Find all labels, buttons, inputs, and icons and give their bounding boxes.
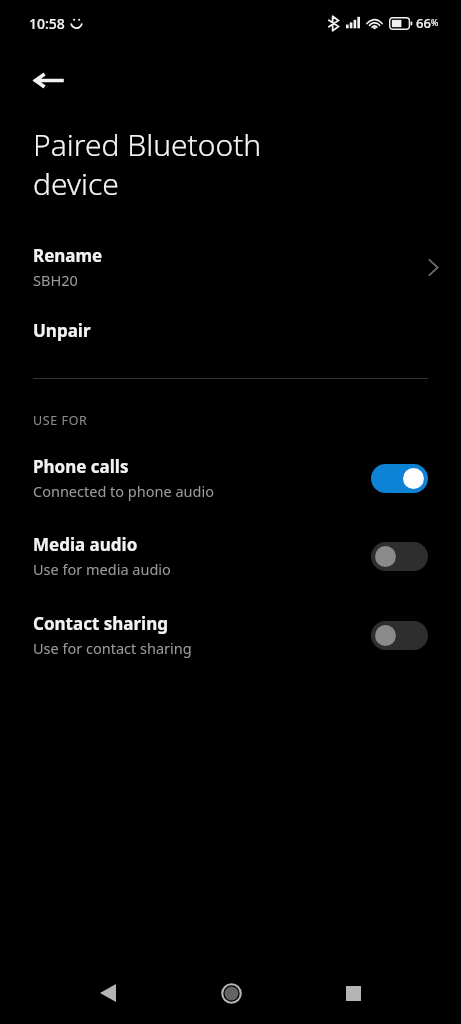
staticText: USE FOR [33,412,88,429]
staticText: 66 [416,14,431,32]
button[interactable]: Off [371,621,428,650]
button[interactable]: Home [209,971,253,1015]
button[interactable]: Contact sharing [0,608,461,662]
button[interactable]: Back [22,54,74,106]
button[interactable]: Recent apps [331,971,375,1015]
button[interactable]: Off [371,542,428,571]
staticText: Contact sharing [33,612,168,635]
button[interactable]: On [371,464,428,493]
button[interactable]: Media audio [0,529,461,583]
staticText: Phone calls [33,455,129,478]
staticText: Use for contact sharing [33,638,192,658]
staticText: Paired Bluetooth device [33,124,341,203]
button[interactable]: Back [86,971,130,1015]
staticText: Rename [33,244,103,267]
button[interactable]: Phone calls [0,451,461,505]
staticText: SBH20 [33,270,78,290]
staticText: Use for media audio [33,559,171,579]
staticText: % [431,17,439,29]
button[interactable]: Rename [0,233,461,301]
button[interactable]: Unpair [0,301,461,359]
staticText: Connected to phone audio [33,481,214,501]
staticText: Unpair [33,319,91,342]
staticText: Media audio [33,533,138,556]
staticText: 10:58 [29,14,65,33]
